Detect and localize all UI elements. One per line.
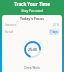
staticText: 4 / 6 — [53, 23, 59, 27]
staticText: Track Your Time — [14, 1, 50, 7]
staticText: 7 days — [50, 30, 58, 34]
staticText: Today's Focus — [2, 16, 62, 21]
staticText: Deep Work — [2, 66, 62, 70]
staticText: Streak — [5, 30, 14, 34]
staticText: Sessions — [5, 23, 17, 27]
staticText: Stay Focused — [21, 8, 43, 13]
staticText: 25:00 — [28, 47, 37, 52]
button[interactable]: 7 days — [49, 29, 59, 35]
